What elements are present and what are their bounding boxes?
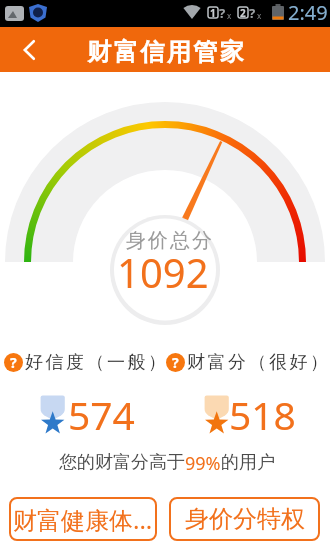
staticText: 2:49 xyxy=(288,0,328,26)
staticText: 财富健康体... xyxy=(13,503,153,536)
staticText: x xyxy=(257,10,262,21)
staticText: 财富分（很好） xyxy=(187,351,330,374)
button[interactable] xyxy=(0,27,52,72)
staticText: 518 xyxy=(229,388,296,441)
button[interactable]: 财富健康体... xyxy=(9,497,157,541)
staticText: ? xyxy=(10,353,17,372)
staticText: 1 xyxy=(210,6,216,20)
staticText: ? xyxy=(172,353,179,372)
staticText: ? xyxy=(249,4,256,22)
staticText: 身价分特权 xyxy=(185,504,305,534)
button[interactable]: ? xyxy=(166,351,330,374)
staticText: 2 xyxy=(240,6,246,20)
staticText: 的用户 xyxy=(221,451,275,474)
staticText: 574 xyxy=(68,388,135,441)
staticText: ? xyxy=(219,4,226,22)
staticText: x xyxy=(227,10,232,21)
button[interactable]: 身价分特权 xyxy=(169,497,320,541)
staticText: 1092 xyxy=(117,245,209,299)
button[interactable]: ? xyxy=(4,351,169,374)
staticText: 99% xyxy=(185,451,221,476)
staticText: 您的财富分高于 xyxy=(59,451,185,474)
staticText: 财富信用管家 xyxy=(86,37,245,67)
staticText: 好信度（一般） xyxy=(25,351,169,374)
staticText: 身价总分 xyxy=(125,228,213,253)
